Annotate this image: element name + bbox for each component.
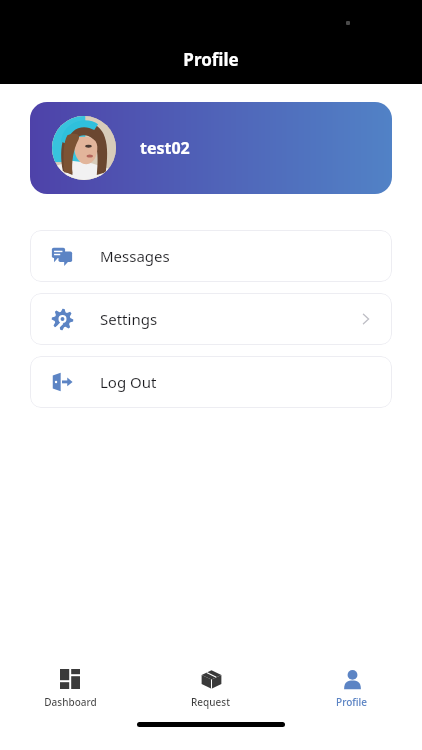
staticText: Messages <box>100 246 170 266</box>
button[interactable]: Dashboard <box>0 664 140 713</box>
button[interactable]: Log Out <box>30 356 392 408</box>
button[interactable]: Settings <box>30 293 392 345</box>
staticText: Profile <box>183 48 239 71</box>
staticText: Dashboard <box>44 695 97 709</box>
staticText: Settings <box>100 309 158 329</box>
staticText: Request <box>191 695 230 709</box>
button[interactable]: test02 <box>30 102 392 194</box>
button[interactable]: Profile <box>281 664 422 713</box>
staticText: test02 <box>140 137 190 159</box>
staticText: Profile <box>336 695 367 709</box>
staticText: Log Out <box>100 372 157 392</box>
button[interactable]: Messages <box>30 230 392 282</box>
button[interactable]: Request <box>140 664 281 713</box>
